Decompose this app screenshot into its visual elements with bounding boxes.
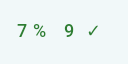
- staticText: 7: [17, 20, 28, 41]
- staticText: ✓: [86, 20, 102, 41]
- staticText: %: [33, 20, 47, 41]
- staticText: 9: [64, 20, 75, 41]
